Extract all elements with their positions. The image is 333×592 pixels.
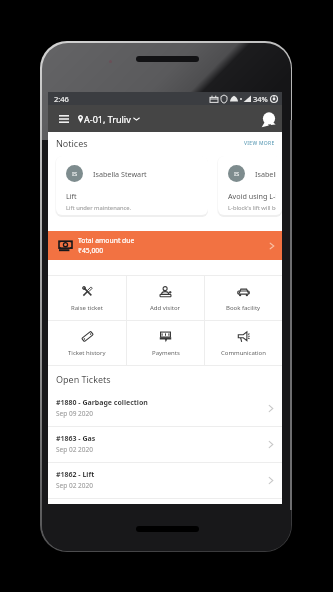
staticText: Notices xyxy=(56,137,88,149)
button[interactable]: Add visitor xyxy=(127,276,204,320)
staticText: Sep 09 2020 xyxy=(56,409,93,418)
button[interactable]: Payments xyxy=(127,321,204,365)
staticText: #1862 - Lift xyxy=(56,470,95,480)
button[interactable]: IS xyxy=(218,156,282,215)
button[interactable]: IS xyxy=(56,156,208,215)
staticText: Raise ticket xyxy=(71,304,103,312)
button[interactable]: Ticket history xyxy=(48,321,126,365)
staticText: A-01, Truliv xyxy=(84,113,131,125)
staticText: VIEW MORE xyxy=(244,140,275,147)
staticText: Total amount due xyxy=(78,236,135,245)
staticText: Communication xyxy=(221,349,266,357)
staticText: Isabella Stewart xyxy=(255,169,276,179)
button[interactable]: Total amount due xyxy=(48,231,282,260)
button[interactable]: Raise ticket xyxy=(48,276,126,320)
staticText: Avoid using L-Block xyxy=(228,191,276,201)
button[interactable]: VIEW MORE xyxy=(242,138,277,149)
staticText: #1880 - Garbage collection xyxy=(56,398,148,408)
staticText: Sep 02 2020 xyxy=(56,445,93,454)
staticText: Lift under maintenance. xyxy=(66,204,132,212)
staticText: #1863 - Gas xyxy=(56,434,96,444)
staticText: Isabella Stewart xyxy=(93,169,147,179)
staticText: Sep 02 2020 xyxy=(56,481,93,490)
staticText: Open Tickets xyxy=(56,373,111,385)
staticText: IS xyxy=(72,170,78,178)
staticText: 34% xyxy=(253,94,268,104)
button[interactable]: Book facility xyxy=(205,276,282,320)
button[interactable]: A-01, Truliv xyxy=(78,113,140,125)
button[interactable]: Chat xyxy=(257,108,279,130)
staticText: IS xyxy=(234,170,240,178)
staticText: Add visitor xyxy=(150,304,181,312)
staticText: Book facility xyxy=(226,304,261,312)
staticText: L-block's lift will be xyxy=(228,204,276,212)
button[interactable]: #1862 - Lift xyxy=(48,463,282,498)
staticText: 2:46 xyxy=(54,94,69,104)
staticText: Ticket history xyxy=(68,349,106,357)
button[interactable]: #1880 - Garbage collection xyxy=(48,391,282,426)
staticText: ₹45,000 xyxy=(78,246,104,255)
button[interactable]: Menu xyxy=(56,111,72,127)
staticText: Payments xyxy=(152,349,180,357)
button[interactable]: Communication xyxy=(205,321,282,365)
staticText: Lift xyxy=(66,191,77,201)
button[interactable]: #1863 - Gas xyxy=(48,427,282,462)
